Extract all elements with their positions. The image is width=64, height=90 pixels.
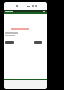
button[interactable]: Primary action [5,41,14,44]
button[interactable]: Secondary action [34,41,42,44]
